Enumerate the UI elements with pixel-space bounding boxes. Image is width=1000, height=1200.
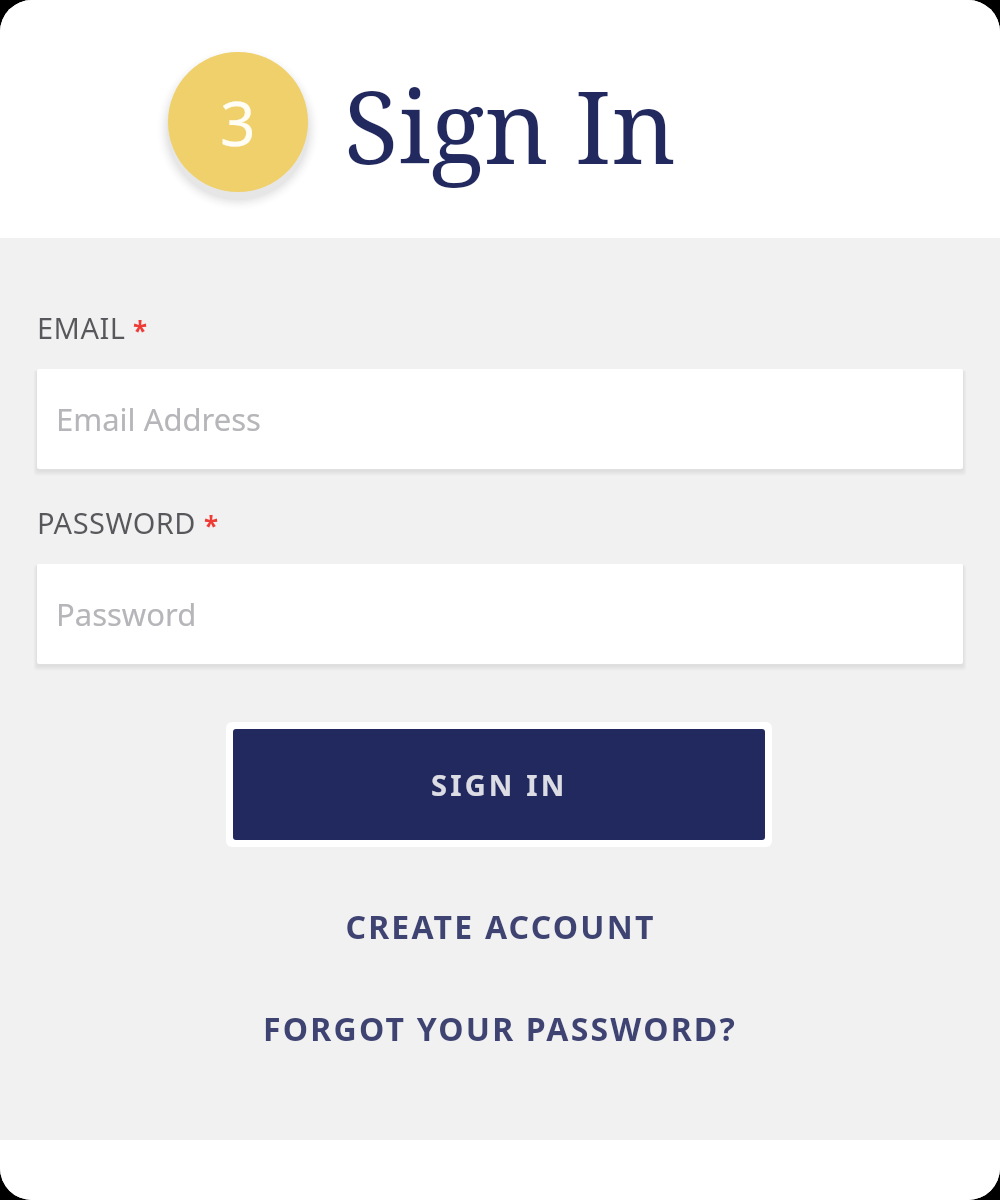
- staticText: Password: [56, 593, 197, 635]
- button[interactable]: CREATE ACCOUNT: [321, 895, 680, 959]
- staticText: SIGN IN: [431, 765, 568, 804]
- staticText: FORGOT YOUR PASSWORD?: [263, 1007, 737, 1051]
- button[interactable]: Email Address: [37, 369, 963, 469]
- staticText: *: [133, 313, 148, 348]
- staticText: PASSWORD: [37, 503, 197, 542]
- staticText: CREATE ACCOUNT: [345, 905, 656, 949]
- staticText: Sign In: [344, 57, 676, 193]
- staticText: *: [204, 508, 219, 543]
- button[interactable]: SIGN IN: [233, 729, 765, 840]
- staticText: Email Address: [56, 398, 261, 440]
- button[interactable]: Password: [37, 564, 963, 664]
- staticText: EMAIL: [37, 308, 126, 347]
- button[interactable]: FORGOT YOUR PASSWORD?: [239, 997, 761, 1061]
- staticText: 3: [220, 80, 256, 164]
